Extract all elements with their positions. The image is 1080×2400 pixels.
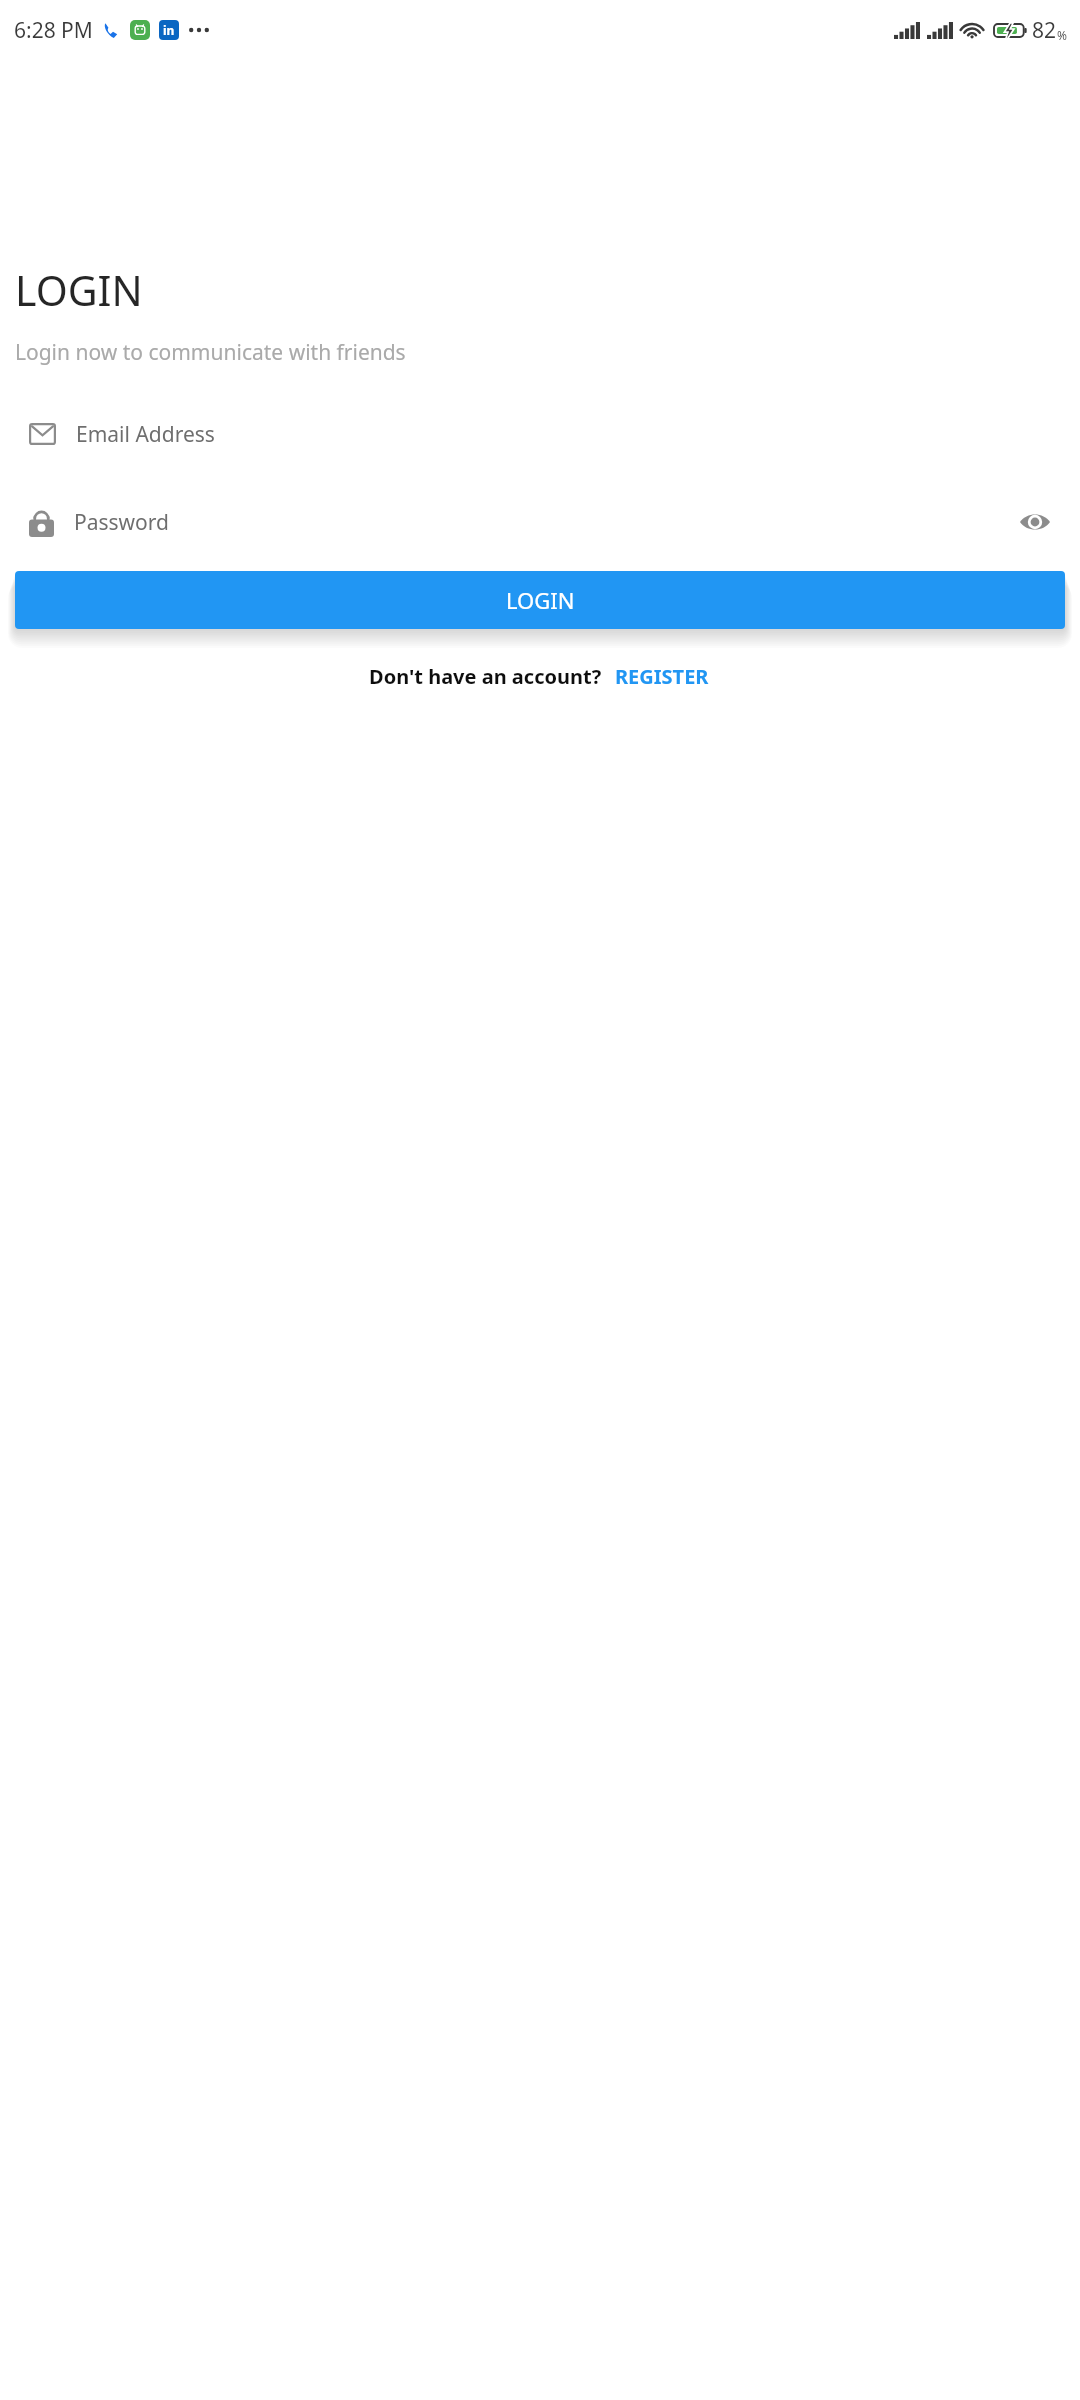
button[interactable]: Password — [0, 493, 1080, 551]
staticText: Email Address — [76, 420, 215, 449]
staticText: % — [1057, 27, 1067, 43]
staticText: in — [163, 22, 175, 38]
staticText: LOGIN — [506, 585, 575, 615]
button[interactable]: REGISTER — [613, 661, 711, 692]
button[interactable]: Email Address — [0, 405, 1080, 463]
staticText: 6:28 PM — [14, 16, 93, 45]
staticText: Password — [74, 508, 169, 537]
staticText: Don't have an account? — [369, 663, 602, 690]
staticText: LOGIN — [15, 262, 143, 318]
staticText: REGISTER — [615, 663, 709, 690]
button[interactable]: Show password — [1012, 499, 1058, 545]
staticText: 82 — [1032, 16, 1057, 45]
button[interactable]: LOGIN — [15, 571, 1065, 629]
staticText: Login now to communicate with friends — [15, 338, 406, 367]
